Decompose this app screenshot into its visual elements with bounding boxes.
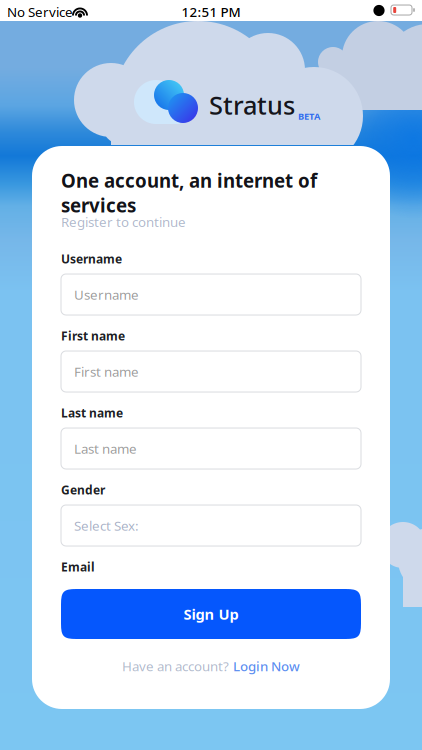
- staticText: Select Sex:: [74, 517, 139, 534]
- staticText: Username: [61, 251, 122, 267]
- button[interactable]: First name: [61, 351, 361, 392]
- staticText: One account, an internet of services: [61, 168, 317, 218]
- button[interactable]: Select Sex:: [61, 505, 361, 546]
- staticText: Sign Up: [183, 604, 238, 624]
- button[interactable]: Have an account?: [32, 654, 390, 678]
- staticText: Email: [61, 559, 95, 575]
- staticText: 12:51 PM: [181, 3, 240, 21]
- staticText: Register to continue: [61, 213, 186, 231]
- staticText: BETA: [298, 110, 320, 122]
- staticText: Gender: [61, 482, 105, 498]
- staticText: First name: [74, 363, 139, 380]
- button[interactable]: Sign Up: [61, 589, 361, 639]
- staticText: Stratus: [209, 88, 295, 122]
- staticText: Have an account?: [122, 657, 229, 675]
- button[interactable]: Username: [61, 274, 361, 315]
- staticText: No Service: [7, 3, 73, 21]
- staticText: Username: [74, 286, 139, 303]
- button[interactable]: Last name: [61, 428, 361, 469]
- staticText: Login Now: [233, 657, 300, 675]
- staticText: First name: [61, 328, 125, 344]
- staticText: Last name: [61, 405, 123, 421]
- staticText: Last name: [74, 440, 137, 457]
